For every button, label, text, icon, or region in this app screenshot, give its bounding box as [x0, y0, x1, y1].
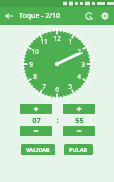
- button[interactable]: Reload: [81, 8, 97, 24]
- staticText: 12: [53, 34, 61, 43]
- staticText: Toque - 2/10: [19, 11, 61, 21]
- button[interactable]: Analog clock showing the time: [20, 27, 94, 101]
- button[interactable]: Decrease minutes: [63, 126, 95, 136]
- button[interactable]: Increase hours: [20, 104, 52, 114]
- staticText: 5: [68, 82, 72, 91]
- staticText: 4: [77, 72, 81, 81]
- staticText: 3: [81, 60, 85, 69]
- button[interactable]: Back: [0, 7, 18, 25]
- button[interactable]: Increase minutes: [63, 104, 95, 114]
- staticText: PULAR: [69, 146, 88, 153]
- staticText: 7: [42, 82, 46, 91]
- button[interactable]: Settings: [97, 8, 113, 24]
- staticText: VALIDAR: [26, 146, 50, 153]
- staticText: 11: [40, 37, 48, 46]
- button[interactable]: Decrease hours: [20, 126, 52, 136]
- staticText: 1: [68, 37, 72, 46]
- staticText: 07: [32, 115, 41, 125]
- staticText: 2: [77, 47, 81, 56]
- staticText: 6: [55, 85, 59, 94]
- staticText: 55: [75, 115, 84, 125]
- button[interactable]: PULAR: [64, 144, 93, 155]
- staticText: 10: [31, 47, 39, 56]
- staticText: :: [56, 115, 59, 125]
- staticText: 9: [29, 60, 33, 69]
- staticText: 8: [33, 72, 37, 81]
- button[interactable]: VALIDAR: [21, 144, 55, 155]
